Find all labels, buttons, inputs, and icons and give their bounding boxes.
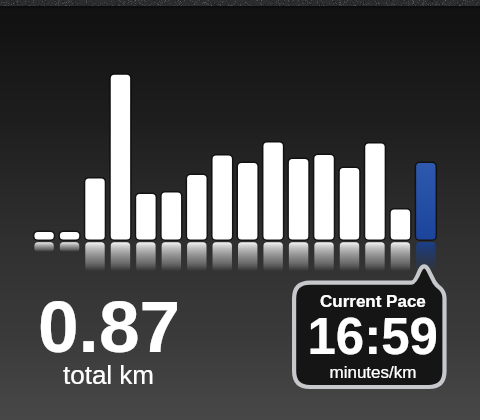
button[interactable]: Current pace 16:59 minutes per kilometre [294, 262, 444, 387]
button[interactable]: Total distance 0.87 km [32, 292, 182, 388]
button[interactable]: Pace per split bar chart [28, 60, 440, 270]
